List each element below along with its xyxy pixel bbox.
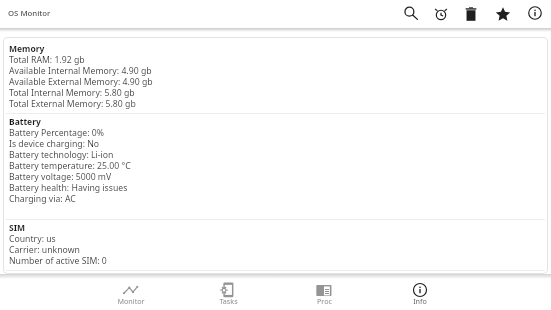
button[interactable]: Proc [276,274,372,307]
staticText: Total RAM: 1.92 gb [9,55,85,66]
button[interactable]: Search [397,0,425,27]
staticText: Total External Memory: 5.80 gb [9,99,136,110]
button[interactable]: Alarm [427,0,455,28]
staticText: Battery technology: Li-ion [9,150,114,161]
staticText: Battery voltage: 5000 mV [9,172,112,183]
staticText: Tasks [219,296,238,305]
staticText: Is device charging: No [9,139,100,150]
staticText: Battery health: Having issues [9,183,128,194]
staticText: Monitor [117,296,145,305]
staticText: Memory [9,44,45,55]
staticText: Battery [9,117,41,128]
button[interactable]: Info [372,274,468,307]
staticText: Country: us [9,234,56,245]
button[interactable]: Info [521,0,549,27]
button[interactable]: Favorite [489,0,517,28]
staticText: Available Internal Memory: 4.90 gb [9,66,152,77]
button[interactable]: Tasks [180,274,276,307]
staticText: OS Monitor [8,8,51,19]
staticText: Charging via: AC [9,194,76,205]
staticText: Battery temperature: 25.00 °C [9,161,131,172]
staticText: SIM [9,223,26,234]
staticText: Total Internal Memory: 5.80 gb [9,88,135,99]
staticText: Carrier: unknown [9,245,80,256]
staticText: Info [413,296,427,305]
staticText: Battery Percentage: 0% [9,128,105,139]
staticText: Number of active SIM: 0 [9,256,107,267]
staticText: Proc [317,296,332,305]
button[interactable]: Delete [457,0,485,28]
staticText: Available External Memory: 4.90 gb [9,77,153,88]
button[interactable]: Monitor [83,274,179,307]
